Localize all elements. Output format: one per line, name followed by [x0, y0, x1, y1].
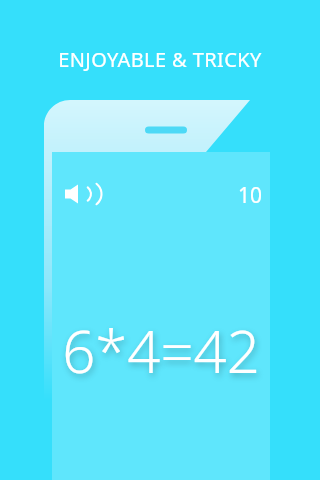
- staticText: 6*4=42: [52, 311, 270, 390]
- button[interactable]: Toggle sound: [61, 180, 91, 210]
- button[interactable]: 10: [236, 181, 262, 209]
- staticText: 10: [236, 181, 262, 209]
- staticText: ENJOYABLE & TRICKY: [58, 46, 262, 73]
